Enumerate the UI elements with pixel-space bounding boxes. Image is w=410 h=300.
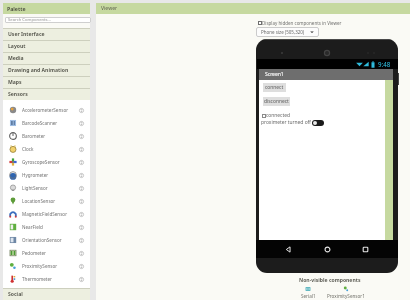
- staticText: Barometer: [22, 133, 46, 139]
- staticText: Pedometer: [22, 250, 47, 256]
- staticText: ProximitySensor: [22, 263, 58, 269]
- button[interactable]: Serial1: [295, 286, 321, 299]
- staticText: AccelerometerSensor: [22, 107, 69, 113]
- button[interactable]: Drawing and Animation: [3, 64, 90, 76]
- button[interactable]: Clock: [3, 142, 90, 155]
- staticText: Layout: [8, 43, 26, 50]
- button[interactable]: Hygrometer: [3, 168, 90, 181]
- staticText: LightSensor: [22, 185, 48, 191]
- button[interactable]: Display hidden components in Viewer: [258, 20, 342, 26]
- staticText: Search Components...: [8, 17, 51, 23]
- button[interactable]: ProximitySensor: [3, 259, 90, 272]
- staticText: OrientationSensor: [22, 237, 62, 243]
- staticText: MagneticFieldSensor: [22, 211, 68, 217]
- button[interactable]: User Interface: [3, 28, 90, 40]
- button[interactable]: Maps: [3, 76, 90, 88]
- staticText: disconnect: [264, 98, 289, 105]
- button[interactable]: GyroscopeSensor: [3, 155, 90, 168]
- button[interactable]: Pedometer: [3, 246, 90, 259]
- staticText: User Interface: [8, 31, 45, 38]
- button[interactable]: Viewer: [96, 3, 410, 14]
- button[interactable]: Sensors: [3, 88, 90, 100]
- staticText: Display hidden components in Viewer: [262, 20, 342, 26]
- staticText: Thermometer: [22, 276, 52, 282]
- button[interactable]: ProximitySensor1: [326, 286, 366, 299]
- staticText: BarcodeScanner: [22, 120, 58, 126]
- staticText: NearField: [22, 224, 43, 230]
- staticText: proximeter turned off: [261, 119, 311, 126]
- staticText: Social: [8, 291, 23, 298]
- button[interactable]: Thermometer: [3, 272, 90, 285]
- button[interactable]: Search Components...: [5, 17, 91, 23]
- staticText: Viewer: [101, 5, 118, 12]
- staticText: GyroscopeSensor: [22, 159, 60, 165]
- staticText: Palette: [7, 5, 26, 12]
- button[interactable]: Layout: [3, 40, 90, 52]
- button[interactable]: BarcodeScanner: [3, 116, 90, 129]
- button[interactable]: connect: [263, 83, 286, 92]
- button[interactable]: Recent apps: [360, 244, 371, 255]
- button[interactable]: Phone size (505,320): [256, 27, 319, 37]
- staticText: Media: [8, 55, 24, 62]
- button[interactable]: LightSensor: [3, 181, 90, 194]
- button[interactable]: AccelerometerSensor: [3, 103, 90, 116]
- button[interactable]: Home: [322, 244, 333, 255]
- staticText: Clock: [22, 146, 34, 152]
- button[interactable]: MagneticFieldSensor: [3, 207, 90, 220]
- staticText: Screen1: [265, 71, 284, 78]
- button[interactable]: connected: [262, 112, 290, 119]
- button[interactable]: [312, 120, 324, 126]
- staticText: connected: [266, 112, 290, 119]
- staticText: LocationSensor: [22, 198, 56, 204]
- button[interactable]: NearField: [3, 220, 90, 233]
- button[interactable]: disconnect: [263, 97, 290, 106]
- staticText: Sensors: [8, 91, 28, 98]
- staticText: Phone size (505,320): [261, 29, 305, 35]
- button[interactable]: Palette: [3, 3, 90, 14]
- staticText: Drawing and Animation: [8, 67, 69, 74]
- staticText: Non-visible components: [299, 277, 361, 284]
- button[interactable]: Barometer: [3, 129, 90, 142]
- button[interactable]: Back: [283, 244, 294, 255]
- staticText: Hygrometer: [22, 172, 49, 178]
- staticText: Serial1: [301, 293, 316, 299]
- button[interactable]: Media: [3, 52, 90, 64]
- staticText: ProximitySensor1: [327, 293, 365, 299]
- button[interactable]: LocationSensor: [3, 194, 90, 207]
- staticText: connect: [265, 84, 284, 91]
- staticText: Maps: [8, 79, 22, 86]
- staticText: 9:48: [378, 60, 391, 68]
- button[interactable]: Social: [3, 288, 90, 300]
- button[interactable]: OrientationSensor: [3, 233, 90, 246]
